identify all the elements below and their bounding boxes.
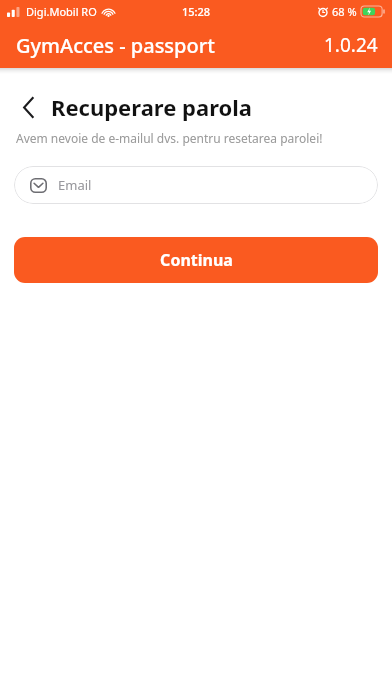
button[interactable]: Continua: [14, 237, 378, 283]
staticText: Email: [58, 176, 92, 194]
staticText: Digi.Mobil RO: [26, 4, 97, 19]
staticText: Avem nevoie de e-mailul dvs. pentru rese…: [16, 130, 323, 146]
staticText: Recuperare parola: [51, 92, 253, 122]
staticText: 1.0.24: [324, 32, 378, 58]
button[interactable]: Back: [14, 93, 42, 121]
staticText: Continua: [160, 249, 233, 271]
staticText: GymAcces - passport: [16, 32, 215, 59]
button[interactable]: Email: [14, 166, 378, 204]
staticText: 68 %: [332, 4, 357, 19]
staticText: 15:28: [182, 4, 211, 19]
